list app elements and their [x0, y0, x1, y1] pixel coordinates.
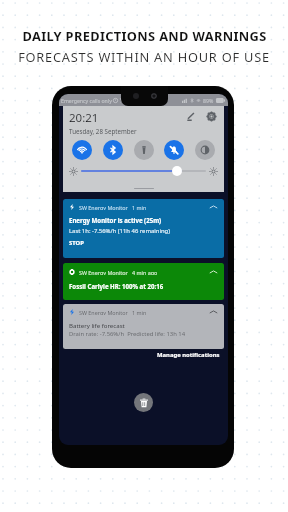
staticText: 1 min	[132, 204, 147, 210]
staticText: SW Energy Monitor	[79, 309, 128, 315]
staticText: Drain rate: -7.56%/h Predicted life: 13h…	[69, 330, 186, 338]
button[interactable]: Bluetooth	[103, 140, 123, 160]
button[interactable]: SW Energy Monitor	[63, 263, 224, 300]
staticText: 89%	[203, 97, 214, 104]
button[interactable]: Manage notifications	[157, 351, 224, 359]
button[interactable]: SW Energy Monitor	[63, 304, 224, 349]
staticText: Emergency calls only	[61, 97, 112, 104]
button[interactable]: Clear all notifications	[134, 393, 153, 412]
button[interactable]: Flashlight	[134, 140, 154, 160]
button[interactable]: Dark theme	[195, 140, 215, 160]
button[interactable]: Settings	[205, 110, 218, 123]
staticText: Battery life forecast	[69, 321, 125, 329]
staticText: Fossil Carlyle HR: 100% at 20:16	[69, 282, 164, 290]
button[interactable]: Do not disturb	[164, 140, 184, 160]
staticText: 1 min	[132, 309, 147, 315]
staticText: Energy Monitor is active (25m)	[69, 216, 162, 224]
staticText: DAILY PREDICTIONS AND WARNINGS	[22, 27, 267, 44]
staticText: Last 1h: -7.56%/h (11h 46 remaining)	[69, 227, 170, 235]
staticText: FORECASTS WITHIN AN HOUR OF USE	[18, 48, 270, 65]
button[interactable]: Wi-Fi	[72, 140, 92, 160]
button[interactable]: SW Energy Monitor	[63, 199, 224, 258]
staticText: STOP	[69, 239, 84, 247]
staticText: 20:21	[69, 110, 99, 126]
staticText: Manage notifications	[157, 351, 220, 359]
button[interactable]: STOP	[69, 239, 84, 247]
staticText: SW Energy Monitor	[79, 204, 128, 210]
staticText: SW Energy Monitor	[79, 269, 128, 275]
staticText: Tuesday, 28 September	[69, 127, 137, 135]
button[interactable]: Edit quick settings	[185, 110, 198, 123]
staticText: 4 min ago	[132, 269, 158, 275]
